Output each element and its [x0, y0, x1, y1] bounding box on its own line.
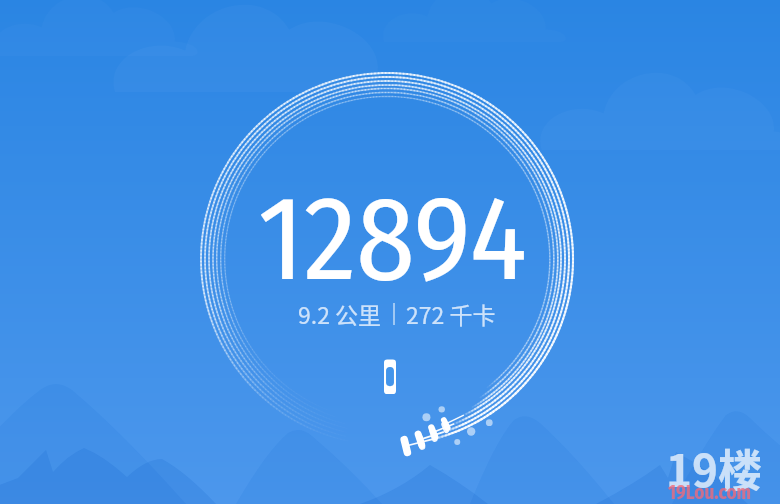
staticText: 19楼	[666, 436, 762, 500]
staticText: 9.2 公里	[298, 297, 382, 330]
staticText: 272 千卡	[406, 297, 496, 330]
staticText: 19Lou.com	[668, 481, 752, 504]
staticText: 12894	[258, 169, 527, 311]
button[interactable]: Fitness band	[378, 354, 402, 400]
